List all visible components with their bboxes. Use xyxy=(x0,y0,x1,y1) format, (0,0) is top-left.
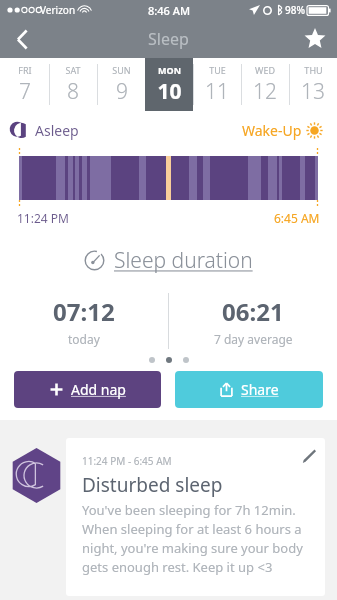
button[interactable]: Favorite xyxy=(293,20,337,58)
staticText: 07:12 xyxy=(53,295,115,328)
staticText: SAT xyxy=(65,64,81,76)
staticText: SUN xyxy=(112,64,131,76)
button[interactable]: Sleep duration xyxy=(84,246,253,275)
button[interactable]: MON xyxy=(145,58,193,111)
staticText: 10 xyxy=(157,77,182,106)
button[interactable]: SAT xyxy=(49,58,97,111)
staticText: WED xyxy=(255,64,275,76)
staticText: 12 xyxy=(253,77,277,106)
staticText: Sleep duration xyxy=(114,246,253,275)
button[interactable]: WED xyxy=(241,58,289,111)
staticText: 11:24 PM xyxy=(17,210,69,226)
staticText: 8:46 AM xyxy=(148,3,191,18)
staticText: 06:21 xyxy=(222,295,284,328)
staticText: TUE xyxy=(209,64,226,76)
staticText: FRI xyxy=(18,64,32,76)
button[interactable]: SUN xyxy=(97,58,145,111)
staticText: 6:45 AM xyxy=(274,210,320,226)
staticText: today xyxy=(68,331,100,347)
staticText: Asleep xyxy=(35,121,79,140)
staticText: 7 xyxy=(19,77,31,106)
staticText: 11:24 PM - 6:45 AM xyxy=(82,454,172,468)
button[interactable]: THU xyxy=(289,58,337,111)
staticText: 9 xyxy=(116,77,128,106)
staticText: 13 xyxy=(301,77,325,106)
staticText: Disturbed sleep xyxy=(82,472,223,498)
button[interactable]: 11:24 PM - 6:45 AM xyxy=(66,438,325,596)
staticText: Sleep xyxy=(148,28,189,50)
staticText: 7 day average xyxy=(214,331,293,347)
staticText: Share xyxy=(241,380,279,399)
staticText: 11 xyxy=(205,77,229,106)
button[interactable]: Edit xyxy=(291,438,325,472)
staticText: Verizon xyxy=(40,3,76,17)
button[interactable]: FRI xyxy=(0,58,49,111)
staticText: 98% xyxy=(285,3,305,17)
button[interactable]: Share xyxy=(175,371,323,408)
staticText: MON xyxy=(158,64,181,76)
staticText: THU xyxy=(304,64,323,76)
staticText: Wake-Up xyxy=(242,121,302,140)
button[interactable]: TUE xyxy=(193,58,241,111)
staticText: You've been sleeping for 7h 12min. When … xyxy=(82,501,309,576)
staticText: 8 xyxy=(67,77,79,106)
staticText: Add nap xyxy=(71,380,126,399)
button[interactable]: 07:12 xyxy=(0,293,168,349)
button[interactable]: 06:21 xyxy=(169,293,337,349)
button[interactable]: Add nap xyxy=(14,371,161,408)
button[interactable]: Back xyxy=(0,20,44,58)
